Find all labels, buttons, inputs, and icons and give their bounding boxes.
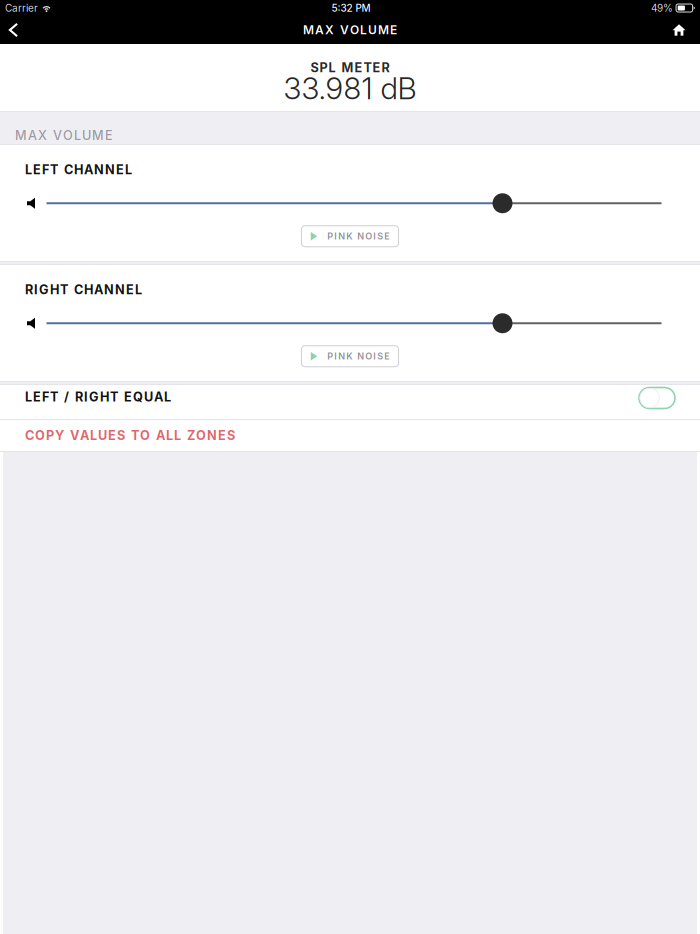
staticText: Carrier [5,2,38,14]
button[interactable]: C O P Y V A L U E S T O A L L Z O N E S [0,420,700,451]
button[interactable]: L E F T / R I G H T E Q U A L [0,385,700,419]
staticText: S P L M E T E R [310,60,389,75]
staticText: 5:32 PM [331,2,370,14]
staticText: M A X V O L U M E [15,128,113,143]
staticText: P I N K N O I S E [327,231,389,242]
staticText: L E F T / R I G H T E Q U A L [25,389,171,405]
staticText: R I G H T C H A N N E L [25,282,142,297]
staticText: 49% [651,2,673,14]
button[interactable]: Home [658,16,700,44]
button[interactable]: Back [0,16,27,44]
staticText: P I N K N O I S E [327,351,389,362]
button[interactable]: P I N K N O I S E [301,346,398,367]
button[interactable]: P I N K N O I S E [301,226,398,247]
staticText: C O P Y V A L U E S T O A L L Z O N E S [25,428,235,443]
staticText: L E F T C H A N N E L [25,162,132,177]
staticText: 33.981 dB [283,70,416,106]
staticText: M A X V O L U M E [303,23,397,37]
